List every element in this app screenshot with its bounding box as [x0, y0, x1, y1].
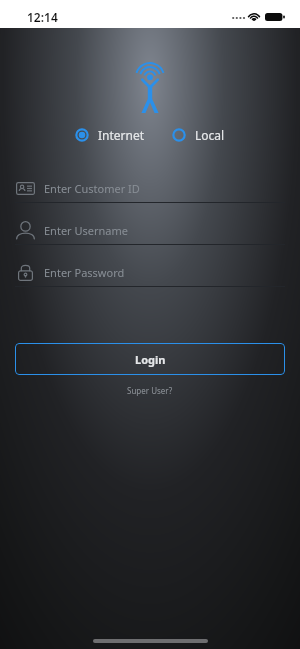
staticText: Login: [135, 352, 166, 367]
button[interactable]: Login: [15, 343, 285, 375]
staticText: Enter Customer ID: [44, 181, 140, 196]
staticText: Local: [195, 127, 225, 143]
staticText: Enter Password: [44, 265, 125, 280]
button[interactable]: Enter Password: [15, 245, 285, 286]
staticText: Enter Username: [44, 223, 129, 238]
button[interactable]: Local: [170, 123, 227, 147]
button[interactable]: Super User?: [121, 383, 179, 398]
button[interactable]: Internet: [73, 123, 147, 147]
staticText: 12:14: [27, 9, 58, 25]
button[interactable]: Enter Username: [15, 203, 285, 244]
button[interactable]: Enter Customer ID: [15, 161, 285, 202]
staticText: Super User?: [127, 385, 173, 396]
staticText: Internet: [98, 127, 145, 143]
